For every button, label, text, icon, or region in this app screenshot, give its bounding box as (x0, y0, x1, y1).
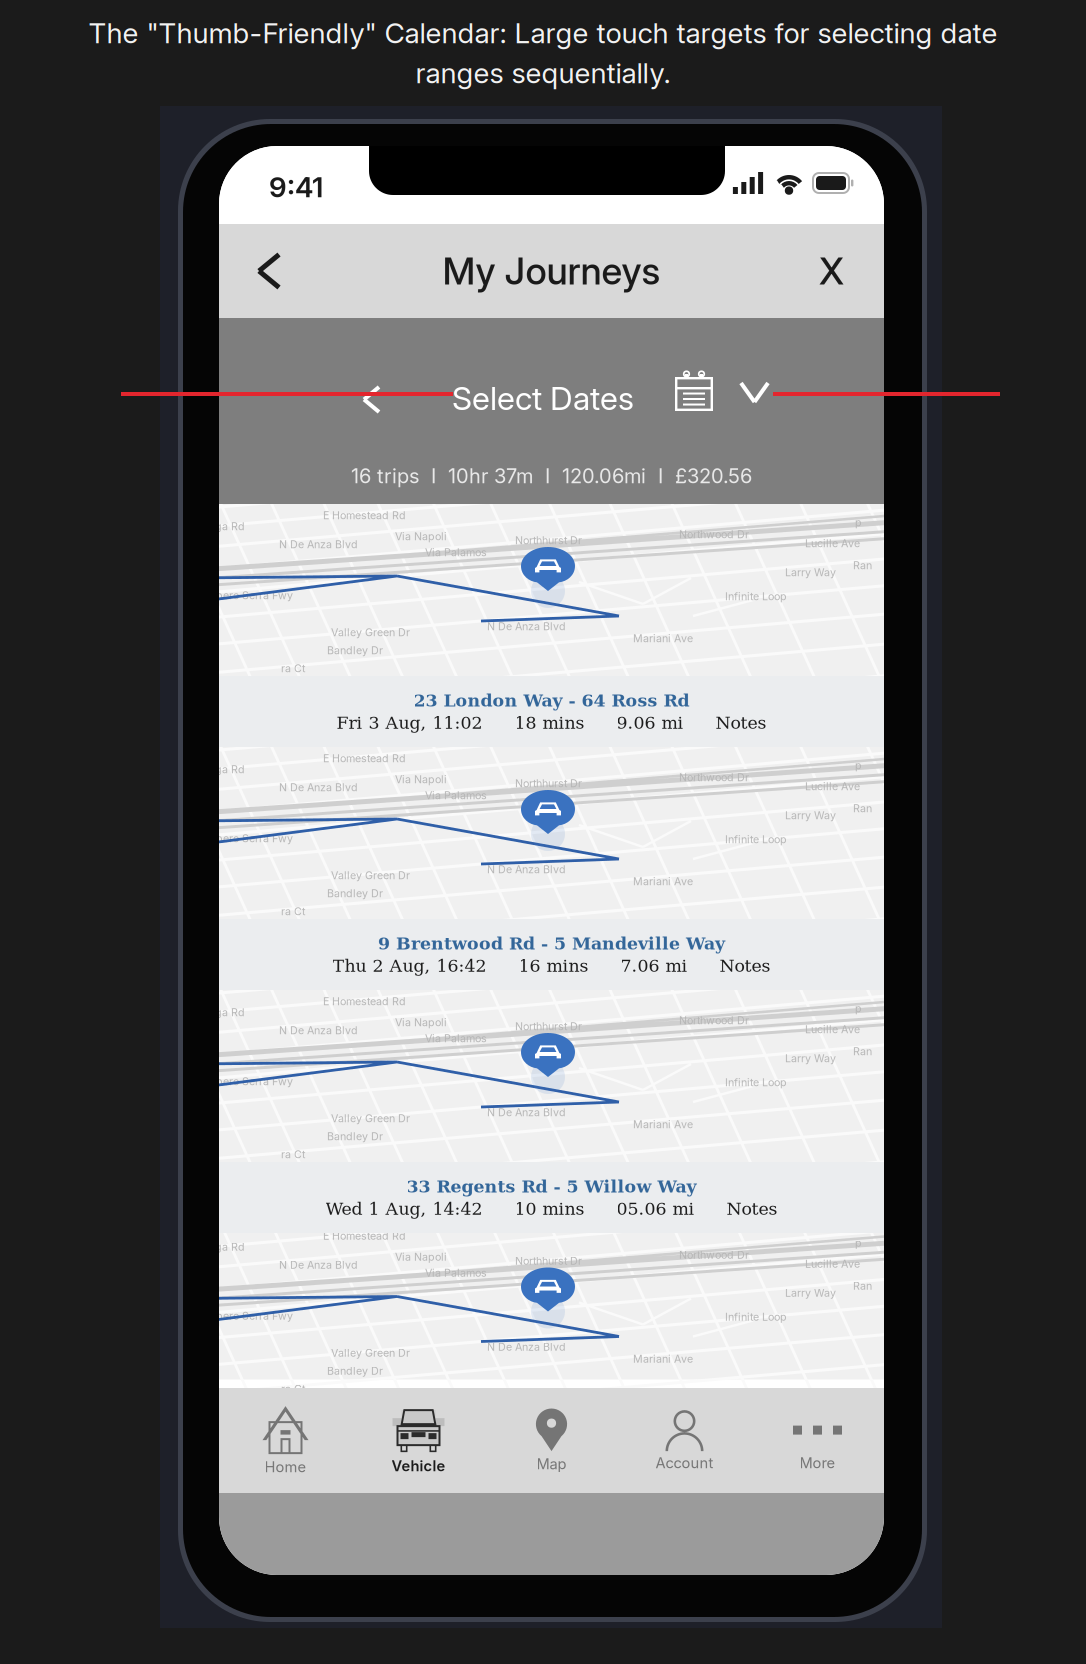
staticText: 18 mins (514, 713, 584, 733)
staticText: N De Anza Blvd (487, 1106, 566, 1119)
staticText: N De Anza Blvd (279, 781, 358, 794)
button[interactable]: Back (235, 220, 303, 321)
button[interactable]: 9 Brentwood Rd - 5 Mandeville Way (219, 919, 884, 990)
staticText: ra Ct (281, 1382, 305, 1395)
staticText: ga Rd (215, 1240, 245, 1253)
staticText: Account (655, 1454, 713, 1472)
staticText: More (799, 1454, 835, 1472)
staticText: Ran (853, 802, 872, 815)
staticText: 23 London Way - 64 Ross Rd (413, 690, 689, 711)
staticText: Home (264, 1458, 306, 1476)
staticText: ra Ct (281, 662, 305, 675)
staticText: Valley Green Dr (331, 869, 410, 882)
staticText: Notes (726, 1199, 777, 1219)
staticText: Ran (853, 559, 872, 572)
staticText: Lucille Ave (805, 1023, 860, 1036)
staticText: Mariani Ave (633, 875, 693, 888)
staticText: Northwood Dr (679, 1014, 749, 1027)
staticText: Via Palamos (425, 546, 487, 559)
staticText: Mariani Ave (633, 1352, 693, 1365)
staticText: 9 Brentwood Rd - 5 Mandeville Way (378, 933, 725, 954)
staticText: p (855, 1236, 862, 1249)
staticText: Via Napoli (395, 1250, 447, 1263)
staticText: Lucille Ave (805, 537, 860, 550)
staticText: Valley Green Dr (331, 626, 410, 639)
staticText: Northhurst Dr (515, 777, 582, 790)
staticText: Thu 2 Aug, 16:42 (332, 956, 486, 976)
staticText: ipero Serra Fwy (213, 1075, 293, 1088)
staticText: Via Napoli (395, 1016, 447, 1029)
staticText: Wed 1 Aug, 14:42 (325, 1199, 482, 1219)
staticText: N De Anza Blvd (279, 1024, 358, 1037)
staticText: p (855, 759, 862, 772)
button[interactable]: Account (618, 1388, 751, 1493)
staticText: p (855, 1002, 862, 1015)
staticText: Notes (715, 713, 766, 733)
staticText: Mariani Ave (633, 632, 693, 645)
button[interactable]: 23 London Way - 64 Ross Rd (219, 676, 884, 747)
staticText: ga Rd (215, 763, 245, 776)
staticText: E Homestead Rd (323, 509, 406, 522)
staticText: My Journeys (442, 248, 660, 294)
staticText: Infinite Loop (725, 1076, 787, 1089)
staticText: Via Palamos (425, 1266, 487, 1279)
staticText: E Homestead Rd (323, 752, 406, 765)
staticText: p (855, 516, 862, 529)
staticText: ga Rd (215, 520, 245, 533)
staticText: ga Rd (215, 1006, 245, 1019)
staticText: Northwood Dr (679, 1248, 749, 1261)
staticText: Bandley Dr (327, 1364, 383, 1377)
staticText: Infinite Loop (725, 833, 787, 846)
staticText: N De Anza Blvd (487, 1340, 566, 1353)
staticText: ra Ct (281, 1148, 305, 1161)
staticText: Select Dates (452, 379, 634, 418)
button[interactable]: Map (485, 1388, 618, 1493)
staticText: 9.06 mi (616, 713, 683, 733)
staticText: 16 trips I 10hr 37m I 120.06mi I £320.56 (351, 464, 752, 488)
staticText: Via Napoli (395, 530, 447, 543)
staticText: Lucille Ave (805, 1257, 860, 1270)
staticText: 16 mins (518, 956, 588, 976)
button[interactable]: More (751, 1388, 884, 1493)
staticText: Lucille Ave (805, 780, 860, 793)
staticText: ranges sequentially. (415, 56, 670, 90)
button[interactable]: Close (795, 218, 868, 324)
staticText: Infinite Loop (725, 590, 787, 603)
staticText: Infinite Loop (725, 1310, 787, 1323)
staticText: Larry Way (785, 809, 836, 822)
button[interactable]: Home (219, 1388, 352, 1493)
staticText: N De Anza Blvd (279, 1258, 358, 1271)
button[interactable]: Expand (725, 367, 784, 418)
button[interactable]: Calendar (665, 359, 723, 423)
staticText: 10 mins (514, 1199, 584, 1219)
staticText: N De Anza Blvd (487, 620, 566, 633)
staticText: 9:41 (269, 170, 323, 204)
staticText: Northhurst Dr (515, 1020, 582, 1033)
staticText: Valley Green Dr (331, 1346, 410, 1359)
staticText: ipero Serra Fwy (213, 589, 293, 602)
staticText: Fri 3 Aug, 11:02 (336, 713, 482, 733)
staticText: Via Palamos (425, 789, 487, 802)
staticText: Larry Way (785, 1286, 836, 1299)
staticText: Via Napoli (395, 773, 447, 786)
staticText: Larry Way (785, 1052, 836, 1065)
button[interactable]: Previous dates (346, 369, 397, 430)
button[interactable]: Select Dates (440, 365, 646, 432)
staticText: X (819, 248, 844, 294)
staticText: Northhurst Dr (515, 1254, 582, 1267)
staticText: 33 Regents Rd - 5 Willow Way (406, 1176, 696, 1197)
staticText: Notes (719, 956, 770, 976)
button[interactable]: Vehicle (352, 1388, 485, 1493)
staticText: N De Anza Blvd (487, 863, 566, 876)
staticText: Northhurst Dr (515, 534, 582, 547)
staticText: Bandley Dr (327, 887, 383, 900)
staticText: Bandley Dr (327, 644, 383, 657)
staticText: Larry Way (785, 566, 836, 579)
staticText: Northwood Dr (679, 771, 749, 784)
staticText: The "Thumb-Friendly" Calendar: Large tou… (88, 16, 997, 50)
staticText: E Homestead Rd (323, 995, 406, 1008)
staticText: Vehicle (391, 1457, 445, 1475)
button[interactable]: 33 Regents Rd - 5 Willow Way (219, 1162, 884, 1233)
staticText: Via Palamos (425, 1032, 487, 1045)
staticText: E Homestead Rd (323, 1229, 406, 1242)
